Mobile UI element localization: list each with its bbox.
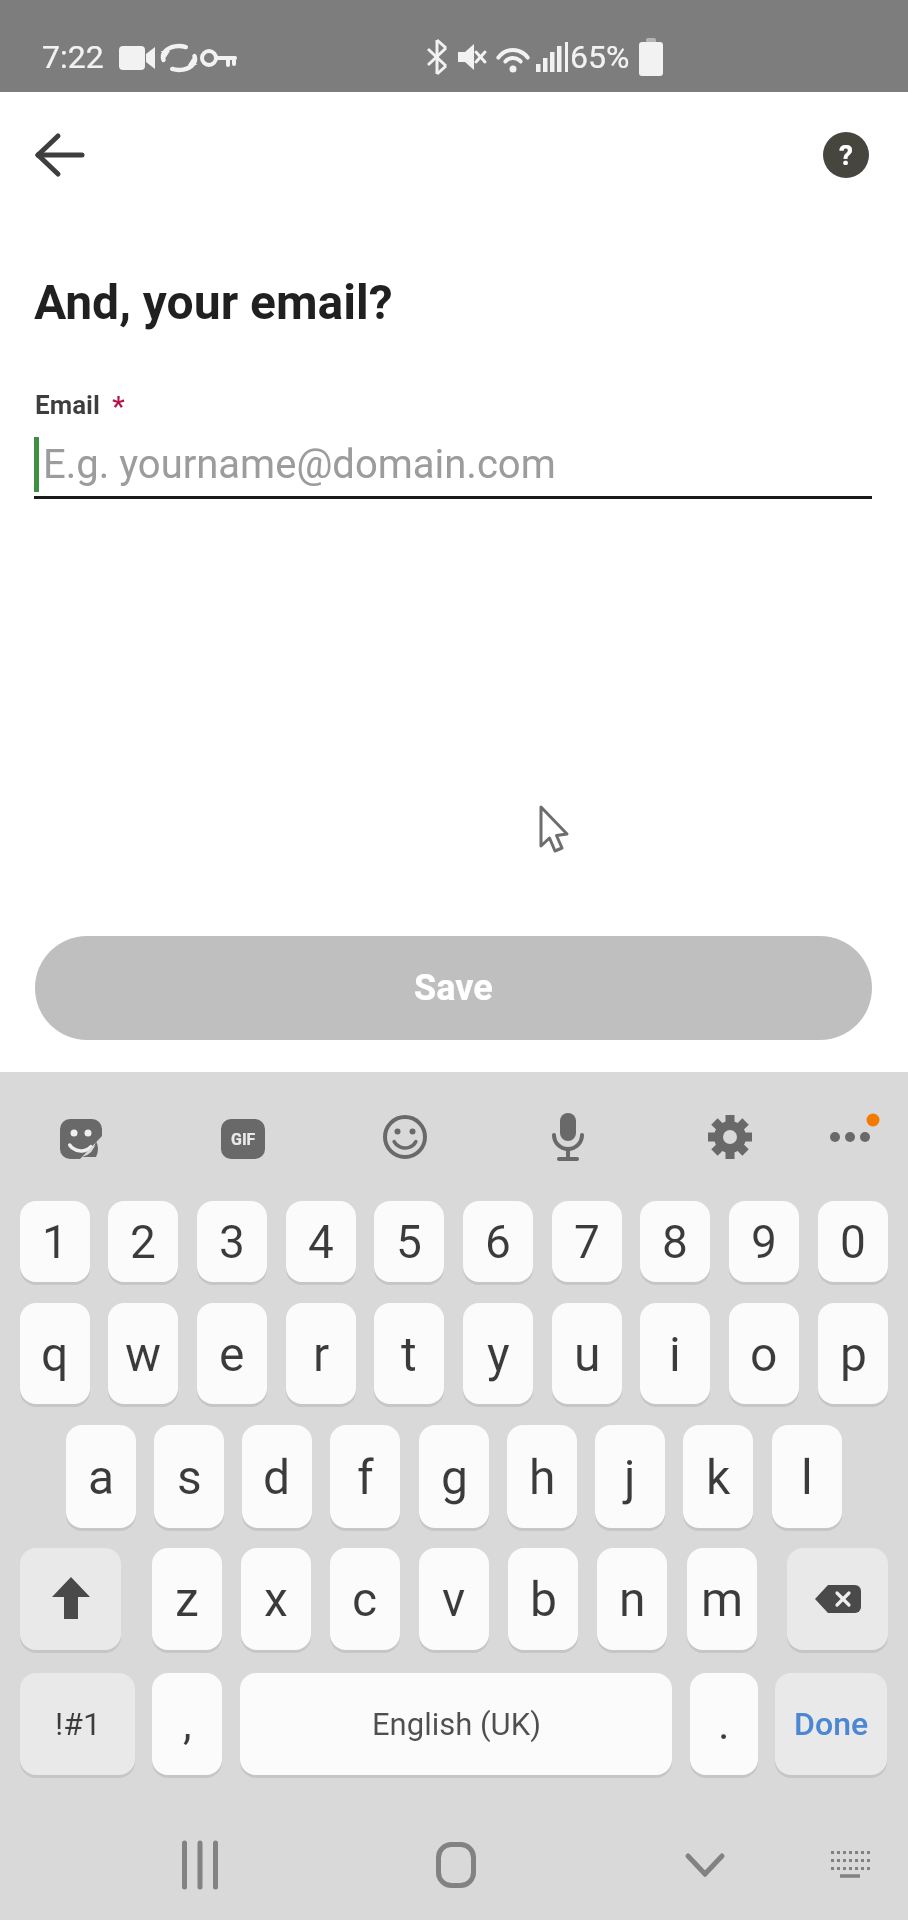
staticText: 8: [662, 1215, 688, 1269]
button[interactable]: [707, 1114, 753, 1160]
staticText: w: [125, 1326, 162, 1382]
staticText: h: [529, 1449, 556, 1505]
button[interactable]: [416, 1830, 496, 1900]
staticText: English (UK): [372, 1706, 541, 1742]
button[interactable]: [20, 115, 100, 195]
button[interactable]: Save: [35, 936, 872, 1040]
button[interactable]: y: [463, 1303, 533, 1404]
button[interactable]: [826, 1110, 882, 1152]
button[interactable]: [665, 1830, 745, 1900]
button[interactable]: English (UK): [240, 1673, 672, 1775]
staticText: 2: [130, 1215, 156, 1269]
button[interactable]: Done: [775, 1673, 887, 1775]
button[interactable]: 3: [197, 1201, 267, 1282]
staticText: 7:22: [42, 38, 104, 76]
button[interactable]: e: [197, 1303, 267, 1404]
button[interactable]: 0: [818, 1201, 888, 1282]
button[interactable]: l: [772, 1425, 842, 1528]
button[interactable]: h: [507, 1425, 577, 1528]
staticText: n: [619, 1571, 646, 1627]
button[interactable]: j: [595, 1425, 665, 1528]
button[interactable]: q: [20, 1303, 90, 1404]
staticText: !#1: [55, 1705, 101, 1743]
staticText: o: [750, 1326, 778, 1382]
button[interactable]: d: [242, 1425, 312, 1528]
staticText: f: [357, 1449, 374, 1505]
button[interactable]: .: [690, 1673, 758, 1775]
staticText: 7: [574, 1215, 600, 1269]
staticText: Save: [414, 967, 493, 1009]
staticText: v: [442, 1571, 466, 1627]
staticText: p: [840, 1326, 867, 1382]
staticText: ?: [839, 139, 853, 172]
staticText: k: [706, 1449, 731, 1505]
button[interactable]: k: [683, 1425, 753, 1528]
button[interactable]: f: [330, 1425, 400, 1528]
staticText: z: [175, 1571, 199, 1627]
staticText: 6: [485, 1215, 511, 1269]
staticText: m: [701, 1571, 744, 1627]
staticText: 1: [42, 1215, 68, 1269]
staticText: Email: [35, 390, 100, 420]
button[interactable]: 4: [286, 1201, 356, 1282]
button[interactable]: c: [330, 1548, 400, 1650]
button[interactable]: b: [508, 1548, 578, 1650]
staticText: 3: [219, 1215, 245, 1269]
staticText: s: [177, 1449, 202, 1505]
staticText: i: [669, 1326, 681, 1382]
button[interactable]: 8: [640, 1201, 710, 1282]
staticText: b: [530, 1571, 557, 1627]
button[interactable]: u: [552, 1303, 622, 1404]
button[interactable]: [815, 1834, 885, 1894]
button[interactable]: [160, 1830, 240, 1900]
staticText: GIF: [231, 1130, 256, 1149]
button[interactable]: g: [419, 1425, 489, 1528]
staticText: x: [264, 1571, 288, 1627]
button[interactable]: [60, 1119, 102, 1159]
button[interactable]: v: [419, 1548, 489, 1650]
button[interactable]: i: [640, 1303, 710, 1404]
button[interactable]: ?: [823, 132, 869, 178]
button[interactable]: [548, 1112, 588, 1164]
staticText: d: [263, 1449, 291, 1505]
button[interactable]: x: [241, 1548, 311, 1650]
button[interactable]: r: [286, 1303, 356, 1404]
button[interactable]: p: [818, 1303, 888, 1404]
button[interactable]: m: [687, 1548, 757, 1650]
staticText: q: [41, 1326, 69, 1382]
button[interactable]: 7: [552, 1201, 622, 1282]
button[interactable]: !#1: [20, 1673, 135, 1775]
button[interactable]: 1: [20, 1201, 90, 1282]
staticText: u: [574, 1326, 601, 1382]
button[interactable]: n: [597, 1548, 667, 1650]
button[interactable]: [30, 425, 872, 497]
button[interactable]: GIF: [221, 1119, 265, 1159]
button[interactable]: 6: [463, 1201, 533, 1282]
button[interactable]: s: [154, 1425, 224, 1528]
staticText: g: [441, 1449, 468, 1505]
button[interactable]: 9: [729, 1201, 799, 1282]
button[interactable]: 2: [108, 1201, 178, 1282]
staticText: c: [352, 1571, 378, 1627]
staticText: 5: [396, 1215, 422, 1269]
staticText: 65%: [570, 38, 630, 76]
button[interactable]: [383, 1115, 427, 1159]
staticText: l: [801, 1449, 813, 1505]
button[interactable]: [20, 1548, 121, 1650]
staticText: a: [88, 1449, 115, 1505]
staticText: t: [401, 1326, 417, 1382]
button[interactable]: z: [152, 1548, 222, 1650]
staticText: Done: [794, 1705, 869, 1743]
staticText: j: [624, 1449, 636, 1505]
staticText: y: [487, 1326, 510, 1382]
button[interactable]: [787, 1548, 888, 1650]
staticText: e: [219, 1326, 245, 1382]
button[interactable]: t: [374, 1303, 444, 1404]
button[interactable]: ,: [152, 1673, 222, 1775]
button[interactable]: 5: [374, 1201, 444, 1282]
button[interactable]: o: [729, 1303, 799, 1404]
button[interactable]: w: [108, 1303, 178, 1404]
button[interactable]: a: [66, 1425, 136, 1528]
staticText: *: [112, 390, 125, 423]
staticText: 4: [308, 1215, 334, 1269]
